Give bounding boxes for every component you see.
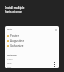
staticText: Fonts: [7, 28, 13, 31]
button[interactable]: Poster: [7, 33, 57, 38]
staticText: Install multiple: [5, 6, 25, 10]
staticText: more: [7, 66, 12, 68]
staticText: agree: [7, 62, 12, 64]
button[interactable]: Galvanize: [7, 43, 57, 48]
staticText: Galvanize: [10, 44, 24, 48]
staticText: 3 fonts: [7, 58, 13, 60]
staticText: Poster: [10, 34, 19, 38]
staticText: Augustine: [10, 39, 25, 43]
button[interactable]: More options: [52, 62, 57, 67]
staticText: Installing: [7, 54, 17, 57]
button[interactable]: Augustine: [7, 38, 57, 43]
staticText: fonts at once: [5, 10, 22, 14]
